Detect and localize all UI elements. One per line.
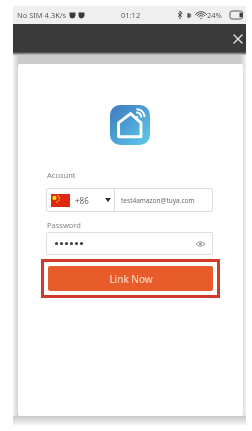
button[interactable]: Close bbox=[228, 29, 248, 49]
button[interactable]: Show password bbox=[189, 233, 211, 255]
staticText: +86 bbox=[75, 195, 89, 206]
staticText: Password bbox=[47, 220, 81, 230]
staticText: No SIM 4.3K/s bbox=[17, 10, 67, 20]
button[interactable]: +86 bbox=[46, 188, 114, 212]
staticText: 01:12 bbox=[121, 10, 141, 20]
button[interactable]: test4amazon@tuya.com bbox=[115, 188, 213, 212]
staticText: 24% bbox=[207, 10, 222, 20]
button[interactable]: Link Now bbox=[48, 266, 213, 291]
staticText: Account bbox=[47, 170, 76, 180]
staticText: test4amazon@tuya.com bbox=[121, 196, 195, 205]
staticText: Link Now bbox=[109, 272, 153, 286]
